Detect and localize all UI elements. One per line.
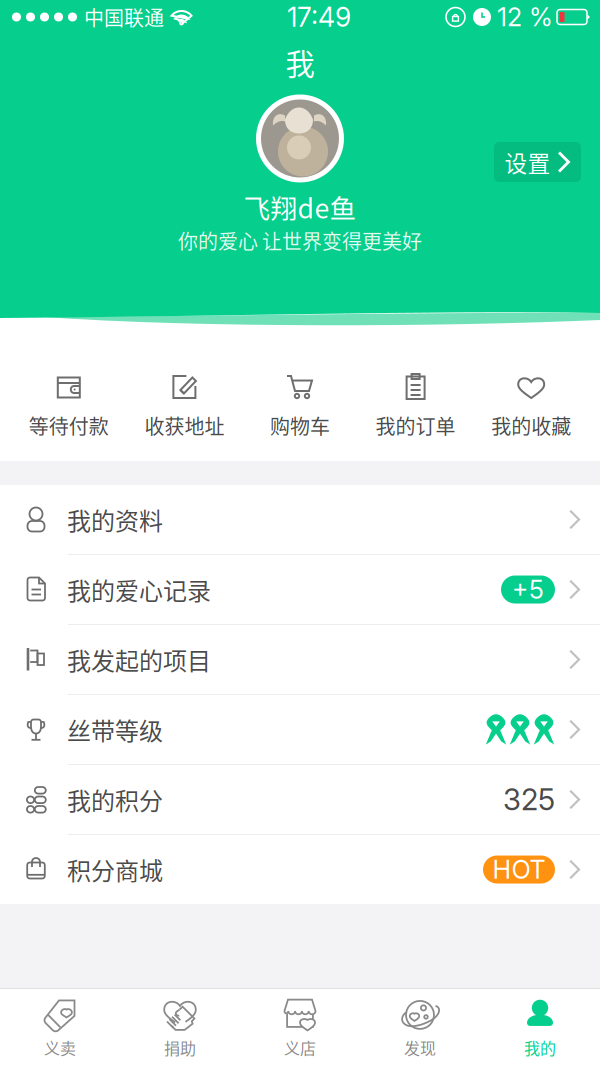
staticText: 等待付款 xyxy=(29,411,109,440)
staticText: 我的收藏 xyxy=(491,411,571,440)
button[interactable]: 我的订单 xyxy=(358,336,473,461)
staticText: 义店 xyxy=(284,1036,316,1059)
staticText: 义卖 xyxy=(44,1036,76,1059)
staticText: 飞翔de鱼 xyxy=(243,187,356,226)
button[interactable]: 义店 xyxy=(240,991,360,1065)
staticText: 发现 xyxy=(404,1036,436,1059)
staticText: HOT xyxy=(492,854,545,885)
staticText: 我的积分 xyxy=(67,782,163,817)
staticText: 12 % xyxy=(497,2,553,32)
button[interactable]: 购物车 xyxy=(242,336,358,461)
staticText: 积分商城 xyxy=(67,852,163,887)
staticText: 我的订单 xyxy=(376,411,456,440)
button[interactable]: 我的爱心记录 xyxy=(0,555,600,625)
staticText: 我的资料 xyxy=(67,502,163,537)
staticText: 17:49 xyxy=(287,1,351,33)
button[interactable]: 捐助 xyxy=(120,991,240,1065)
button[interactable]: 设置 xyxy=(494,142,581,182)
staticText: 捐助 xyxy=(164,1036,196,1059)
button[interactable]: 我的积分 xyxy=(0,765,600,835)
staticText: 我发起的项目 xyxy=(67,642,211,677)
staticText: 我 xyxy=(285,41,314,83)
staticText: 购物车 xyxy=(270,411,330,440)
staticText: 设置 xyxy=(504,146,550,178)
staticText: 我的 xyxy=(524,1036,556,1059)
staticText: +5 xyxy=(512,574,544,605)
button[interactable]: 我的资料 xyxy=(0,485,600,555)
staticText: 你的爱心 让世界变得更美好 xyxy=(178,226,422,255)
button[interactable]: 我的收藏 xyxy=(473,336,589,461)
staticText: 中国联通 xyxy=(84,2,164,31)
staticText: 325 xyxy=(503,782,555,817)
button[interactable]: 积分商城 xyxy=(0,835,600,904)
button[interactable]: 收获地址 xyxy=(127,336,242,461)
staticText: 我的爱心记录 xyxy=(67,572,211,607)
button[interactable]: 发现 xyxy=(360,991,480,1065)
staticText: 丝带等级 xyxy=(67,712,163,747)
button[interactable]: 我发起的项目 xyxy=(0,625,600,695)
staticText: 收获地址 xyxy=(144,411,224,440)
button[interactable]: 等待付款 xyxy=(11,336,127,461)
button[interactable]: 我的 xyxy=(480,991,600,1065)
button[interactable]: 义卖 xyxy=(0,991,120,1065)
button[interactable]: 丝带等级 xyxy=(0,695,600,765)
